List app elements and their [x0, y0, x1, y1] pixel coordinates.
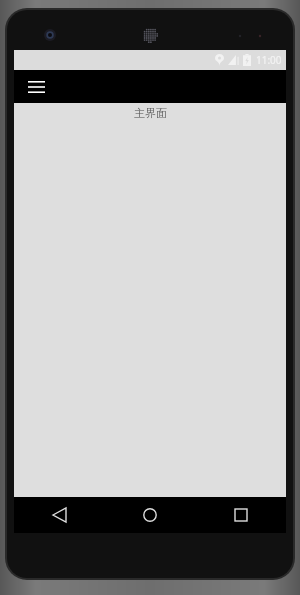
staticText: 主界面	[134, 106, 167, 120]
staticText: 11:00	[256, 53, 282, 67]
button[interactable]: Home	[104, 497, 195, 533]
button[interactable]: Back	[14, 497, 104, 533]
button[interactable]: Recent apps	[195, 497, 286, 533]
button[interactable]: Open navigation menu	[23, 74, 49, 100]
